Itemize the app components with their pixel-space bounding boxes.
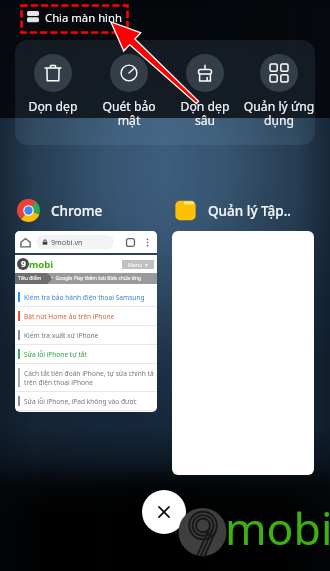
button[interactable]: Quản lý ứng dụng <box>243 54 315 129</box>
staticText: Quản lý ứng dụng <box>243 98 315 129</box>
staticText: Chia màn hình <box>45 10 122 25</box>
button[interactable]: Chrome <box>17 199 157 222</box>
staticText: Chrome <box>51 202 103 220</box>
button[interactable]: Close all <box>142 490 186 534</box>
staticText: Dọn dẹp <box>15 98 91 115</box>
staticText: Menu ▾ <box>128 261 148 268</box>
staticText: Kiểm tra xuất xứ iPhone <box>24 331 155 340</box>
button[interactable]: Dọn dẹp <box>15 54 91 115</box>
button[interactable]: Quản lý Tập.. <box>174 199 314 222</box>
staticText: mobi <box>225 497 330 558</box>
staticText: Sửa lỗi iPhone, iPad không vào được <box>24 397 155 406</box>
staticText: Bật nút Home ảo trên iPhone <box>24 312 155 321</box>
staticText: Sửa lỗi iPhone tự tắt <box>24 350 155 359</box>
button[interactable]: Quét bảo mật <box>91 54 167 129</box>
staticText: Tiêu điểm <box>18 275 42 282</box>
button[interactable]: Chia màn hình <box>27 4 122 30</box>
button[interactable]: Dọn dẹp sâu <box>167 54 243 129</box>
staticText: 9 <box>21 258 26 270</box>
staticText: Cách tắt tiên đoán iPhone, tự sửa chính … <box>24 369 155 387</box>
staticText: Quản lý Tập.. <box>208 202 291 220</box>
staticText: Quét bảo mật <box>91 98 167 129</box>
button[interactable] <box>172 231 314 475</box>
staticText: • Google Play thêm tab Kids chứa ứng <box>51 275 141 282</box>
button[interactable]: 9mobi.vn <box>15 231 157 412</box>
staticText: 9mobi.vn <box>51 237 83 247</box>
staticText: Kiểm tra bảo hành điện thoại Samsung <box>24 293 155 302</box>
staticText: mobi <box>29 258 54 271</box>
staticText: Dọn dẹp sâu <box>167 98 243 129</box>
